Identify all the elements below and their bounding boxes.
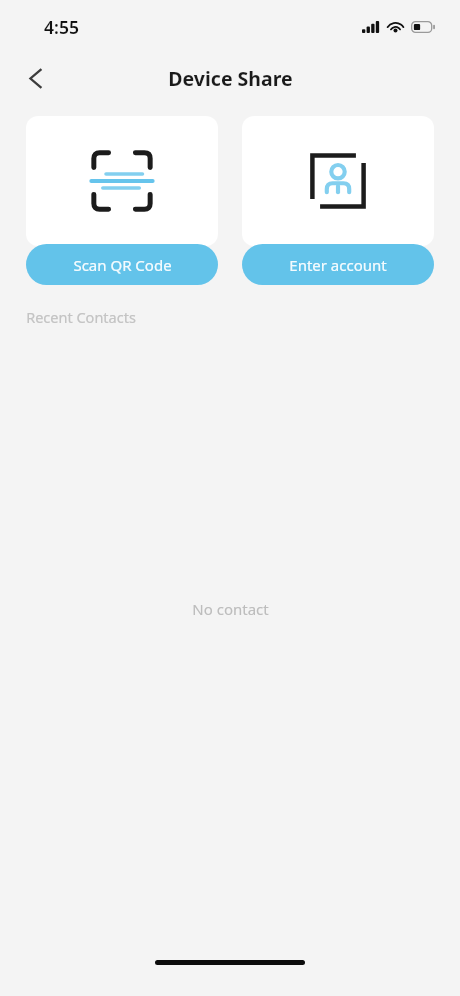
- staticText: Device Share: [168, 65, 293, 92]
- staticText: No contact: [192, 599, 269, 619]
- staticText: Recent Contacts: [26, 307, 136, 327]
- staticText: Scan QR Code: [73, 255, 172, 275]
- button[interactable]: Scan QR Code: [26, 116, 218, 287]
- button[interactable]: Enter account: [242, 116, 434, 287]
- staticText: 4:55: [44, 15, 79, 39]
- button[interactable]: Back: [12, 55, 58, 101]
- staticText: Enter account: [289, 255, 387, 275]
